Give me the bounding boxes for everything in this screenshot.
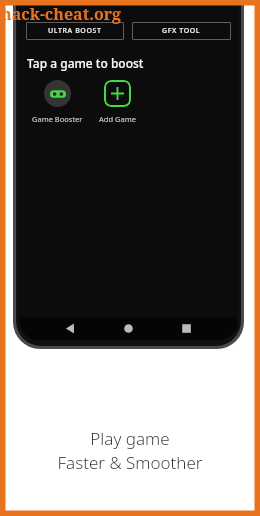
staticText: Add Game xyxy=(99,114,136,124)
staticText: Play game xyxy=(90,427,170,450)
button[interactable]: Add Game xyxy=(99,80,136,124)
staticText: Tap a game to boost xyxy=(27,55,144,71)
staticText: ULTRA BOOST xyxy=(48,26,102,36)
button[interactable]: GFX TOOL xyxy=(132,22,231,40)
staticText: Game Booster xyxy=(32,114,83,124)
button[interactable]: ULTRA BOOST xyxy=(26,22,124,40)
button[interactable]: Game Booster xyxy=(32,80,83,124)
staticText: hack-cheat.org xyxy=(1,3,122,25)
staticText: Faster & Smoother xyxy=(57,451,203,474)
staticText: GFX TOOL xyxy=(162,26,201,36)
